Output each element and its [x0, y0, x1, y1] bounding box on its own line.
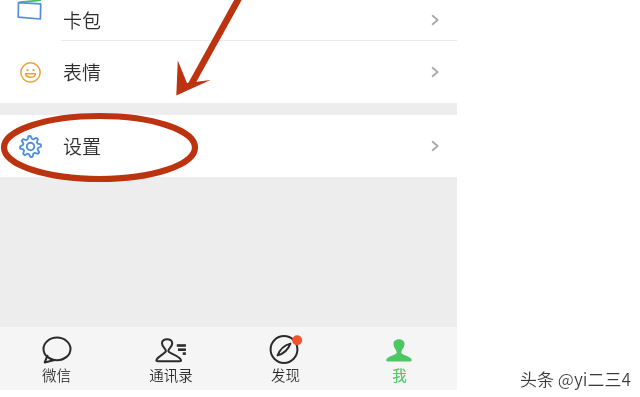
staticText: 卡包: [63, 6, 102, 34]
button[interactable]: 表情: [0, 41, 457, 103]
button[interactable]: 设置: [0, 115, 457, 177]
staticText: 通讯录: [149, 364, 193, 385]
staticText: 我: [392, 364, 407, 385]
staticText: 表情: [63, 58, 102, 86]
button[interactable]: 微信: [0, 327, 114, 385]
button[interactable]: 发现: [228, 327, 342, 385]
staticText: 设置: [63, 132, 102, 160]
staticText: 发现: [271, 364, 300, 385]
staticText: 微信: [42, 364, 71, 385]
staticText: 头条 @yi二三4: [520, 366, 631, 391]
button[interactable]: 我: [342, 327, 456, 385]
button[interactable]: 卡包: [0, 0, 457, 40]
button[interactable]: 通讯录: [114, 327, 228, 385]
